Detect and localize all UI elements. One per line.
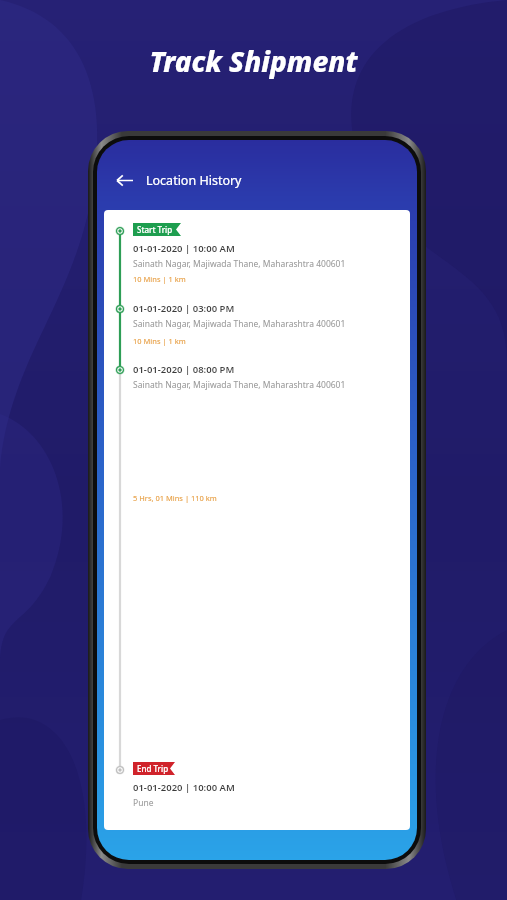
staticText: Location History <box>146 172 242 189</box>
staticText: End Trip <box>137 763 169 774</box>
staticText: 01-01-2020 | 08:00 PM <box>133 363 235 376</box>
staticText: 10 Mins | 1 km <box>133 336 186 346</box>
button[interactable]: End Trip <box>133 762 175 775</box>
button[interactable]: Back <box>111 167 137 193</box>
staticText: 10 Mins | 1 km <box>133 274 186 284</box>
button[interactable]: Start Trip <box>133 223 181 236</box>
staticText: Pune <box>133 797 154 809</box>
staticText: Sainath Nagar, Majiwada Thane, Maharasht… <box>133 318 346 330</box>
staticText: 01-01-2020 | 03:00 PM <box>133 302 235 315</box>
staticText: Sainath Nagar, Majiwada Thane, Maharasht… <box>133 258 346 270</box>
button[interactable]: Back <box>97 160 417 200</box>
staticText: 01-01-2020 | 10:00 AM <box>133 781 235 794</box>
staticText: Start Trip <box>137 224 173 235</box>
staticText: 01-01-2020 | 10:00 AM <box>133 242 235 255</box>
staticText: Sainath Nagar, Majiwada Thane, Maharasht… <box>133 379 346 391</box>
staticText: 5 Hrs, 01 Mins | 110 km <box>133 493 217 503</box>
staticText: Track Shipment <box>0 42 507 80</box>
